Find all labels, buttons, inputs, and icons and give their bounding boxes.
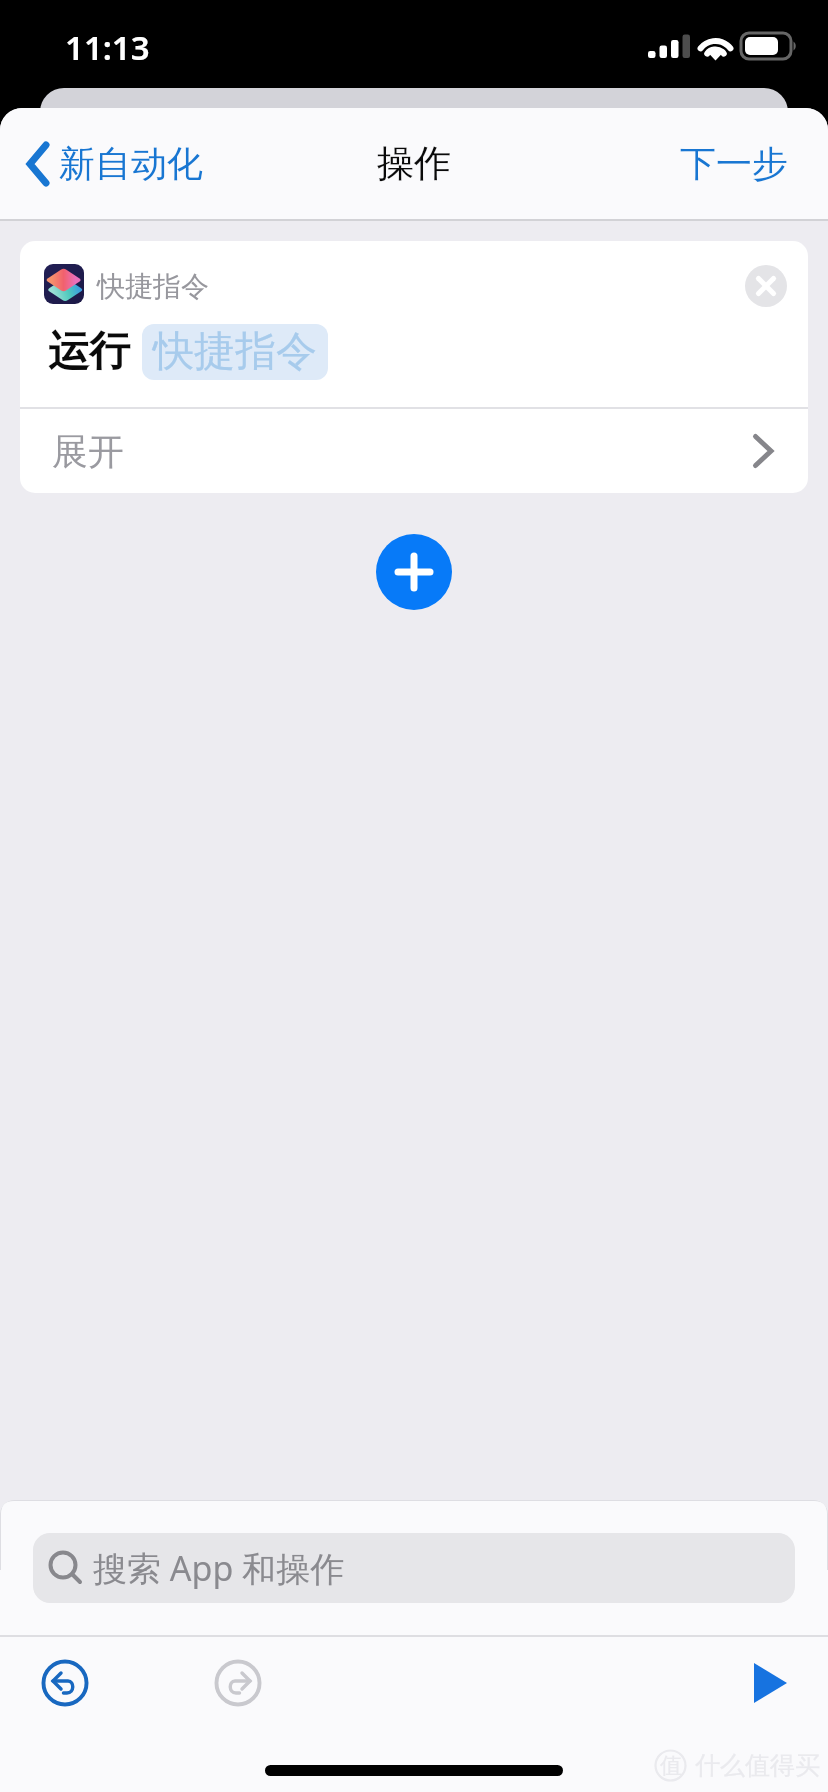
button[interactable]: 重做	[214, 1659, 262, 1707]
staticText: 运行	[48, 326, 130, 378]
button[interactable]: 添加操作	[376, 534, 452, 610]
staticText: 快捷指令	[97, 269, 209, 304]
button[interactable]: 搜索 App 和操作	[33, 1533, 795, 1603]
staticText: 操作	[377, 140, 451, 187]
button[interactable]: 运行	[740, 1655, 796, 1711]
button[interactable]: 删除操作	[744, 264, 788, 308]
staticText: 展开	[52, 429, 124, 474]
button[interactable]: 下一步	[660, 129, 828, 198]
staticText: 值	[660, 1752, 682, 1780]
staticText: 11:13	[65, 25, 150, 70]
staticText: 新自动化	[59, 141, 203, 186]
staticText: 快捷指令	[153, 326, 317, 378]
button[interactable]: 展开	[20, 409, 808, 493]
button[interactable]: 新自动化	[0, 131, 217, 196]
button[interactable]: 撤销	[41, 1659, 89, 1707]
button[interactable]: 快捷指令	[20, 241, 808, 407]
staticText: 下一步	[680, 141, 788, 186]
staticText: 搜索 App 和操作	[93, 1545, 345, 1591]
staticText: 什么值得买	[695, 1750, 820, 1781]
